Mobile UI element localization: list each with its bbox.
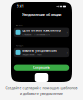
staticText: › — [67, 30, 68, 34]
staticText: ЕСЛИ — [16, 23, 23, 27]
staticText: Выслать уведомление — [22, 49, 57, 52]
staticText: и добавьте уведомление — [20, 91, 63, 96]
staticText: Уведомление · Push — [22, 53, 41, 56]
button[interactable]: Сохранить — [14, 65, 69, 71]
button[interactable]: Выслать уведомление — [14, 48, 69, 57]
staticText: Создайте сценарий с помощью шаблонов — [5, 86, 77, 90]
staticText: Сбербанк · Изменение 5 % — [22, 33, 50, 36]
staticText: › — [67, 50, 68, 55]
button[interactable]: Цена актива изменилась — [14, 28, 69, 37]
staticText: 9:41 — [17, 5, 24, 8]
staticText: ТОГДА — [16, 44, 24, 47]
staticText: Уведомление об акции — [22, 12, 61, 17]
staticText: Сохранить — [33, 66, 50, 70]
staticText: Цена актива изменилась — [22, 29, 61, 32]
